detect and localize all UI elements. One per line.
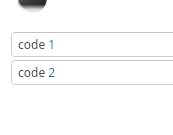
staticText: code 1 bbox=[18, 36, 56, 52]
button[interactable]: code 1 bbox=[11, 32, 173, 57]
staticText: code 2 bbox=[18, 64, 56, 80]
other: Header image bbox=[17, 0, 47, 14]
button[interactable]: code 2 bbox=[11, 60, 173, 85]
